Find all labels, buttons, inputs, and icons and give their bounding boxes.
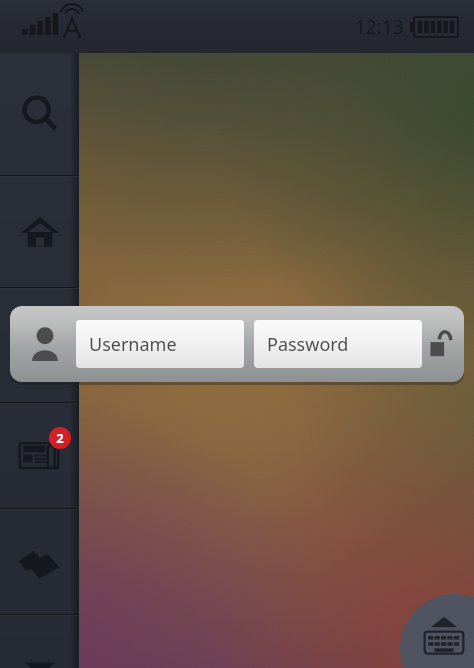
button[interactable]: Username	[76, 320, 244, 368]
button[interactable]: Unlock	[430, 322, 452, 366]
staticText: 12:13	[355, 14, 404, 40]
button[interactable]: Show keyboard	[400, 594, 474, 668]
button[interactable]: Password	[254, 320, 422, 368]
button[interactable]: Search	[0, 53, 79, 175]
button[interactable]: News	[0, 403, 79, 508]
staticText: Username	[89, 332, 177, 357]
staticText: Password	[267, 332, 349, 357]
button[interactable]: Account	[22, 321, 68, 367]
staticText: 2	[56, 429, 64, 447]
button[interactable]: More	[0, 615, 79, 668]
button[interactable]: Home	[0, 176, 79, 287]
button[interactable]: Photos	[0, 509, 79, 614]
